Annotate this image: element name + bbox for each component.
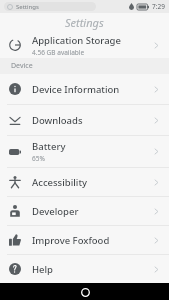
staticText: Improve Foxfood [32,234,110,247]
button[interactable]: Accessibility [0,168,169,196]
staticText: Battery [32,140,66,153]
button[interactable]: Help [0,255,169,283]
staticText: 7:29 [152,2,165,11]
button[interactable]: Downloads [0,105,169,135]
staticText: Device Information [32,83,120,96]
staticText: Accessibility [32,176,88,189]
staticText: 4.56 GB available [32,48,85,57]
button[interactable]: Developer [0,197,169,225]
button[interactable]: Improve Foxfood [0,226,169,254]
button[interactable]: Home [77,284,93,300]
staticText: Device [11,61,33,71]
staticText: Application Storage [32,34,121,47]
staticText: Developer [32,205,79,218]
staticText: Help [32,263,54,276]
button[interactable]: Device Information [0,74,169,104]
staticText: Settings [16,3,39,11]
staticText: 65% [32,154,45,163]
staticText: Downloads [32,114,83,127]
button[interactable]: Application Storage [0,32,169,58]
staticText: Settings [65,15,104,30]
button[interactable]: Battery [0,136,169,167]
